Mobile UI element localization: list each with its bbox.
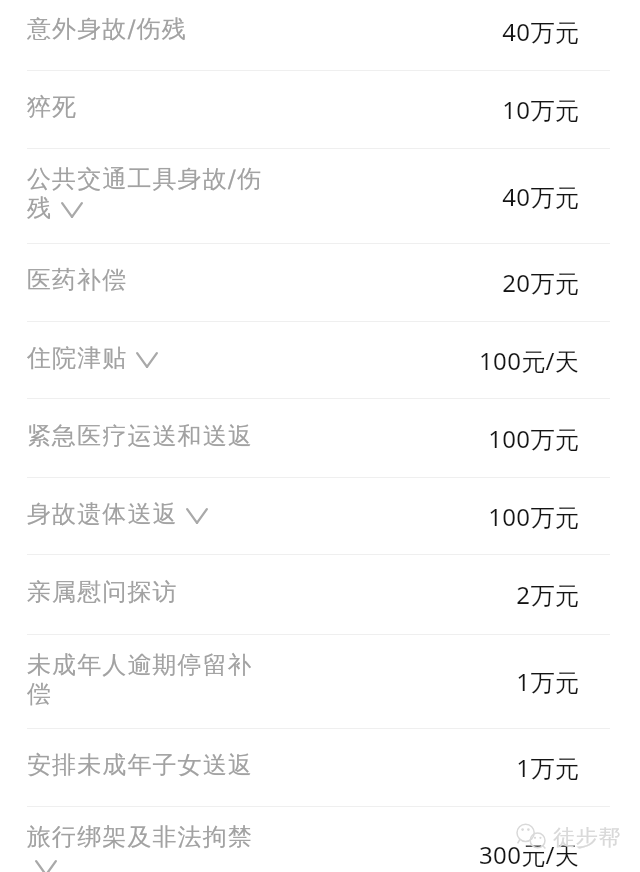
- button[interactable]: 身故遗体送返: [0, 478, 640, 554]
- staticText: 40万元: [502, 180, 579, 213]
- staticText: 安排未成年子女送返: [27, 750, 253, 779]
- button[interactable]: 旅行绑架及非法拘禁: [0, 807, 640, 872]
- staticText: 亲属慰问探访: [27, 577, 178, 606]
- button[interactable]: Show details: [35, 851, 57, 872]
- staticText: 公共交通工具身故∕伤: [27, 164, 263, 193]
- button[interactable]: 公共交通工具身故∕伤: [0, 149, 640, 243]
- button[interactable]: Show details: [61, 193, 83, 222]
- staticText: 1万元: [516, 665, 579, 698]
- staticText: 身故遗体送返: [27, 499, 178, 528]
- staticText: 2万元: [516, 578, 579, 611]
- staticText: 意外身故∕伤残: [27, 14, 187, 43]
- staticText: 100万元: [488, 422, 579, 455]
- button[interactable]: Show details: [186, 499, 208, 528]
- button[interactable]: 安排未成年子女送返: [0, 729, 640, 806]
- staticText: 住院津贴: [27, 343, 128, 372]
- button[interactable]: 住院津贴: [0, 322, 640, 398]
- staticText: 100万元: [488, 500, 579, 533]
- button[interactable]: 意外身故∕伤残: [0, 0, 640, 70]
- other: WeChat account watermark: [516, 821, 550, 853]
- button[interactable]: 未成年人逾期停留补: [0, 635, 640, 728]
- staticText: 徒步帮: [553, 824, 622, 852]
- button[interactable]: 亲属慰问探访: [0, 555, 640, 634]
- button[interactable]: Show details: [136, 343, 158, 372]
- staticText: 偿: [27, 679, 53, 708]
- staticText: 残: [27, 193, 53, 222]
- staticText: 猝死: [27, 92, 78, 121]
- staticText: 300元/天: [479, 838, 579, 871]
- staticText: 未成年人逾期停留补: [27, 650, 253, 679]
- staticText: 医药补偿: [27, 265, 128, 294]
- staticText: 1万元: [516, 751, 579, 784]
- staticText: 旅行绑架及非法拘禁: [27, 822, 253, 851]
- button[interactable]: 猝死: [0, 71, 640, 148]
- staticText: 40万元: [502, 15, 579, 48]
- staticText: 100元/天: [479, 344, 579, 377]
- button[interactable]: 紧急医疗运送和送返: [0, 399, 640, 477]
- staticText: 10万元: [502, 93, 579, 126]
- staticText: 紧急医疗运送和送返: [27, 421, 253, 450]
- staticText: 20万元: [502, 266, 579, 299]
- button[interactable]: 医药补偿: [0, 244, 640, 321]
